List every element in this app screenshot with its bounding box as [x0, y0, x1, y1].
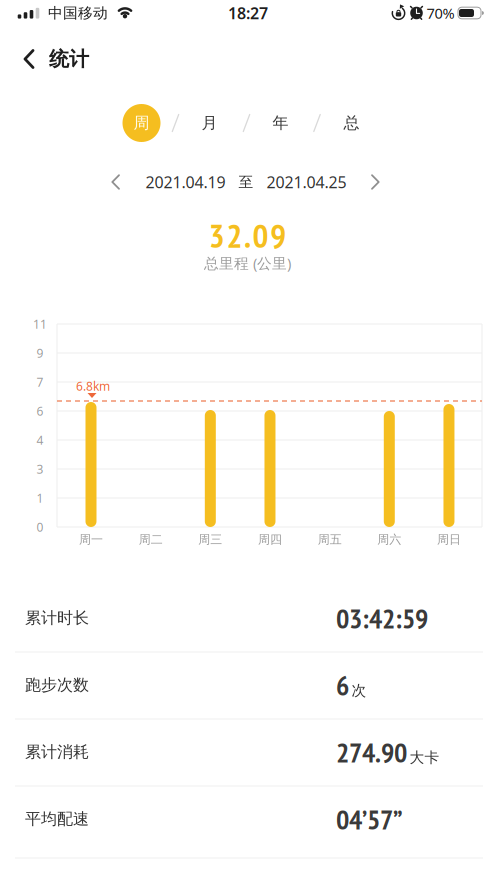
- staticText: 6: [336, 667, 349, 703]
- staticText: 中国移动: [48, 4, 108, 22]
- staticText: 03:42:59: [336, 600, 428, 636]
- staticText: 70%: [426, 3, 454, 23]
- staticText: 月: [201, 113, 217, 133]
- staticText: 9: [36, 345, 43, 361]
- staticText: 跑步次数: [25, 675, 89, 695]
- button[interactable]: 年: [262, 105, 298, 141]
- staticText: 至: [238, 173, 253, 191]
- staticText: 2021.04.25: [266, 171, 346, 193]
- staticText: 04’57”: [336, 801, 403, 837]
- staticText: 总: [343, 113, 359, 133]
- staticText: 6: [36, 403, 43, 419]
- staticText: 周一: [79, 532, 103, 547]
- staticText: 2021.04.19: [145, 171, 225, 193]
- staticText: 周: [133, 113, 149, 133]
- staticText: 周二: [139, 532, 163, 547]
- button[interactable]: [97, 164, 133, 200]
- staticText: 平均配速: [25, 809, 89, 829]
- staticText: 4: [36, 432, 43, 448]
- staticText: 1: [36, 490, 43, 506]
- button[interactable]: 月: [191, 105, 227, 141]
- staticText: 年: [272, 113, 288, 133]
- button[interactable]: [15, 37, 59, 81]
- staticText: 次: [351, 682, 366, 700]
- staticText: 18:27: [228, 2, 268, 24]
- staticText: 周六: [377, 532, 401, 547]
- staticText: 11: [33, 316, 47, 332]
- staticText: 3: [36, 461, 43, 477]
- staticText: 周日: [437, 532, 461, 547]
- staticText: 32.09: [209, 214, 286, 257]
- staticText: 7: [36, 374, 43, 390]
- staticText: 累计消耗: [25, 742, 89, 762]
- staticText: 周五: [318, 532, 342, 547]
- staticText: 总里程 (公里): [204, 253, 291, 273]
- staticText: 累计时长: [25, 608, 89, 628]
- staticText: 周三: [198, 532, 222, 547]
- button[interactable]: 总: [333, 105, 369, 141]
- staticText: 统计: [49, 47, 89, 71]
- staticText: 周四: [258, 532, 282, 547]
- staticText: 大卡: [409, 749, 439, 767]
- button[interactable]: [357, 164, 393, 200]
- staticText: 6.8km: [76, 378, 110, 394]
- staticText: 274.90: [336, 734, 407, 770]
- button[interactable]: 周: [122, 104, 160, 142]
- staticText: 0: [36, 519, 43, 535]
